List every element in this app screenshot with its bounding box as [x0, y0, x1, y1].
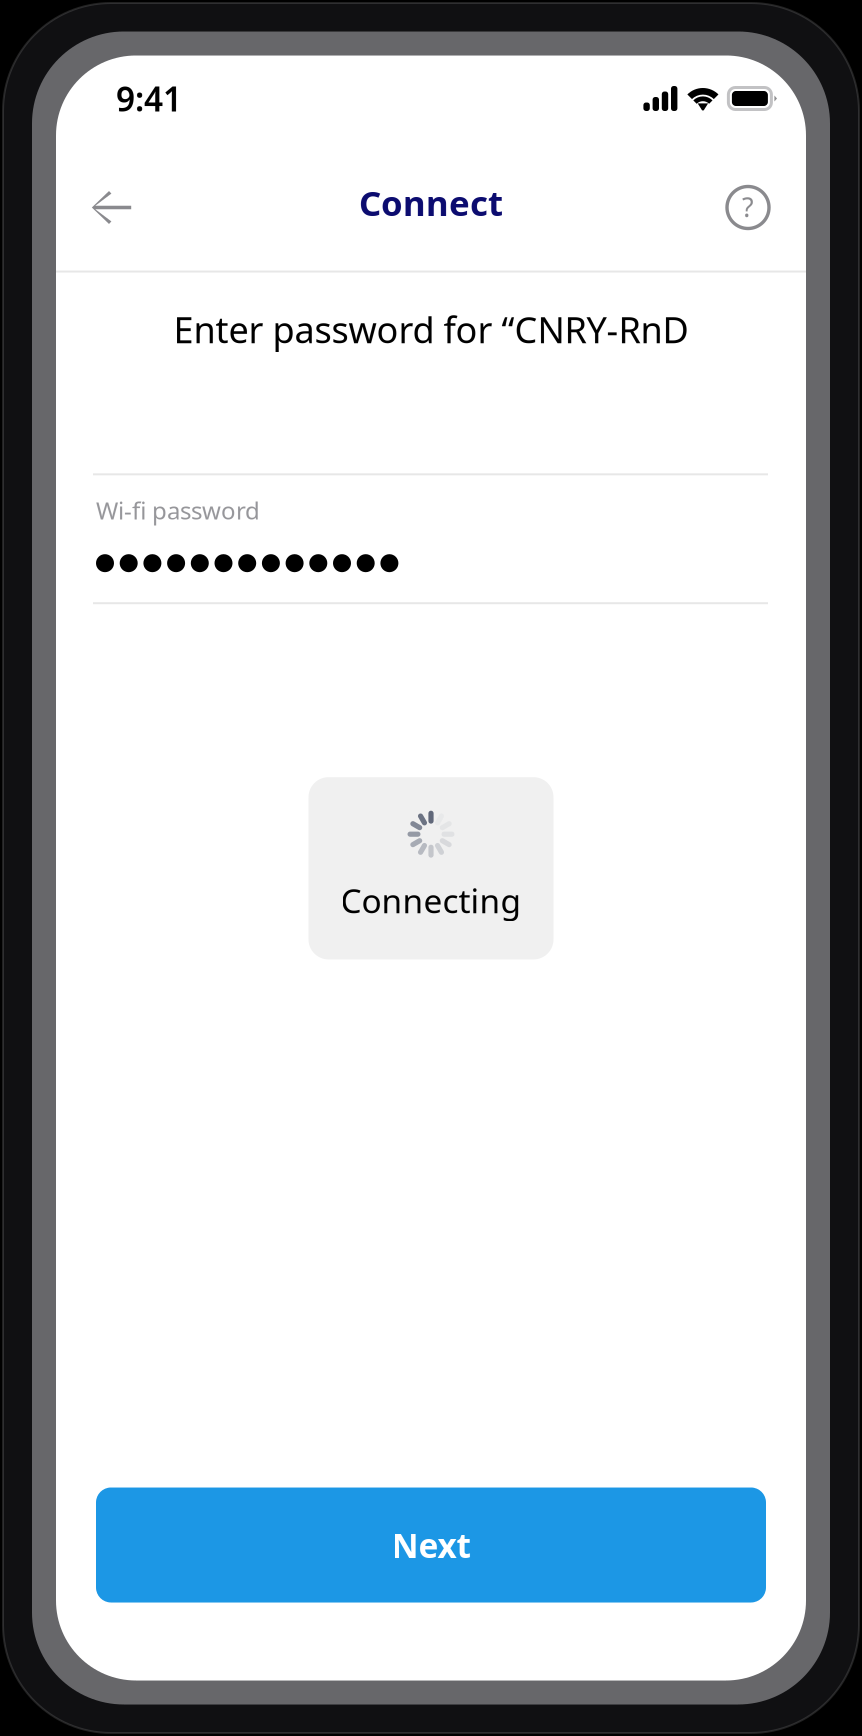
- button[interactable]: Next: [96, 1487, 766, 1602]
- staticText: Wi-fi password: [96, 494, 260, 526]
- staticText: 9:41: [116, 76, 182, 121]
- button[interactable]: Help: [710, 169, 786, 245]
- staticText: Enter password for “CNRY-RnD: [173, 305, 688, 353]
- button[interactable]: Back: [74, 169, 150, 245]
- staticText: Connecting: [340, 878, 521, 922]
- staticText: Next: [391, 1523, 470, 1567]
- staticText: Connect: [359, 179, 503, 225]
- staticText: ?: [742, 189, 754, 225]
- button[interactable]: Wi-fi password: [56, 473, 806, 604]
